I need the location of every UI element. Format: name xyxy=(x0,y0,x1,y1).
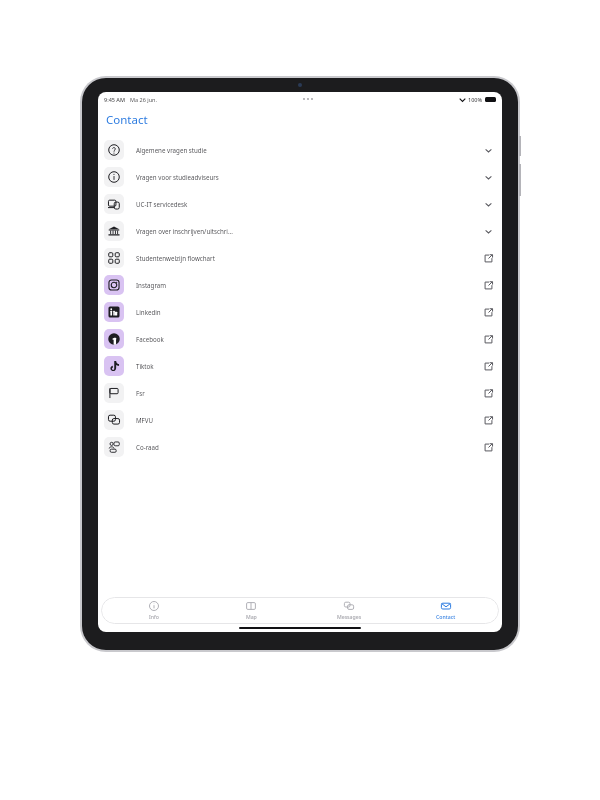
button[interactable]: Open Facebook xyxy=(480,331,496,347)
button[interactable]: MFVU xyxy=(98,406,502,433)
staticText: Linkedin xyxy=(136,308,161,316)
button[interactable]: Info xyxy=(110,598,198,623)
button[interactable]: Open Instagram xyxy=(480,277,496,293)
button[interactable]: Studentenwelzijn flowchart xyxy=(98,244,502,271)
staticText: 9:45 AM xyxy=(104,96,126,103)
staticText: Info xyxy=(149,613,159,620)
staticText: Facebook xyxy=(136,335,164,343)
staticText: Algemene vragen studie xyxy=(136,146,207,154)
staticText: UC-IT servicedesk xyxy=(136,200,188,208)
button[interactable]: Open Fsr xyxy=(480,385,496,401)
staticText: Ma 26 jun. xyxy=(130,96,157,103)
staticText: Contact xyxy=(436,613,456,620)
button[interactable]: Fsr xyxy=(98,379,502,406)
button[interactable]: Expand Algemene vragen studie xyxy=(480,142,496,158)
button[interactable]: Map xyxy=(207,598,295,623)
staticText: Co-raad xyxy=(136,443,159,451)
button[interactable]: Expand Vragen over inschrijven/uitschri.… xyxy=(480,223,496,239)
staticText: Fsr xyxy=(136,389,145,397)
staticText: Tiktok xyxy=(136,362,154,370)
staticText: Messages xyxy=(337,613,362,620)
staticText: 100% xyxy=(468,96,483,103)
button[interactable]: Open Tiktok xyxy=(480,358,496,374)
staticText: Studentenwelzijn flowchart xyxy=(136,254,215,262)
button[interactable]: Expand Vragen voor studieadviseurs xyxy=(480,169,496,185)
staticText: Contact xyxy=(106,112,148,128)
staticText: MFVU xyxy=(136,416,154,424)
button[interactable]: Algemene vragen studie xyxy=(98,136,502,163)
staticText: Instagram xyxy=(136,281,167,289)
staticText: Vragen voor studieadviseurs xyxy=(136,173,219,181)
button[interactable]: Vragen over inschrijven/uitschri... xyxy=(98,217,502,244)
button[interactable]: Open Studentenwelzijn flowchart xyxy=(480,250,496,266)
button[interactable]: Open MFVU xyxy=(480,412,496,428)
button[interactable]: Messages xyxy=(305,598,393,623)
button[interactable]: Contact xyxy=(402,598,490,623)
button[interactable]: Open Linkedin xyxy=(480,304,496,320)
button[interactable]: Linkedin xyxy=(98,298,502,325)
staticText: Map xyxy=(246,613,257,620)
button[interactable]: Vragen voor studieadviseurs xyxy=(98,163,502,190)
button[interactable]: UC-IT servicedesk xyxy=(98,190,502,217)
button[interactable]: Tiktok xyxy=(98,352,502,379)
button[interactable]: Open Co-raad xyxy=(480,439,496,455)
button[interactable]: Co-raad xyxy=(98,433,502,460)
button[interactable]: Instagram xyxy=(98,271,502,298)
button[interactable]: Facebook xyxy=(98,325,502,352)
staticText: Vragen over inschrijven/uitschri... xyxy=(136,227,233,235)
button[interactable]: Expand UC-IT servicedesk xyxy=(480,196,496,212)
